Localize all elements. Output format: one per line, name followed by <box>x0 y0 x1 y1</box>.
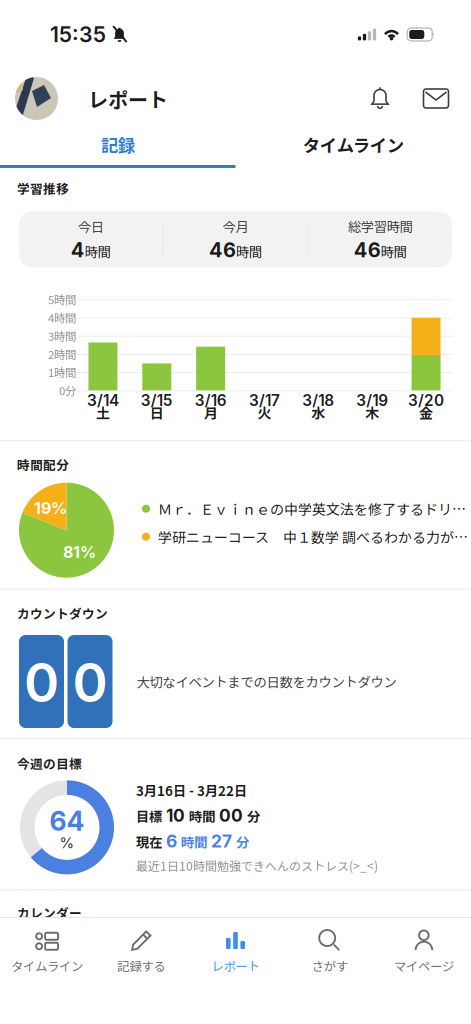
staticText: カウントダウン <box>17 604 108 622</box>
staticText: 00 <box>215 805 247 826</box>
button[interactable]: マイページ <box>377 918 471 978</box>
staticText: 0 <box>24 650 59 715</box>
staticText: 0 <box>72 650 107 715</box>
staticText: 分 <box>247 806 260 825</box>
staticText: さがす <box>312 956 348 974</box>
staticText: 5時間 <box>48 291 76 307</box>
staticText: 46 <box>354 238 381 262</box>
staticText: 3/19 <box>356 391 388 410</box>
staticText: 月 <box>204 402 218 422</box>
staticText: 今月 <box>222 217 248 236</box>
staticText: レポート <box>88 84 168 113</box>
staticText: 3/18 <box>302 391 334 410</box>
staticText: 81% <box>63 542 96 562</box>
staticText: 水 <box>311 402 325 422</box>
button[interactable]: 記録 <box>0 128 235 168</box>
staticText: 今週の目標 <box>17 754 82 772</box>
staticText: 分 <box>236 832 249 851</box>
staticText: タイムライン <box>11 956 83 974</box>
staticText: 現在 <box>136 832 162 851</box>
button[interactable]: 記録する <box>94 918 188 978</box>
staticText: 3/17 <box>249 391 280 410</box>
staticText: Ｍｒ．Ｅｖｉｎｅの中学英文法を修了するドリル 5… <box>158 498 471 519</box>
staticText: 最近1日10時間勉強できへんのストレス(>_<) <box>136 857 378 874</box>
button[interactable]: タイムライン <box>0 918 94 978</box>
staticText: 学研ニューコース 中１数学 調べるわかる力がつく… <box>158 526 471 547</box>
button[interactable]: レポート <box>188 918 283 978</box>
staticText: 3/15 <box>141 391 173 410</box>
staticText: 15:35 <box>50 22 106 47</box>
staticText: 今日 <box>78 217 104 236</box>
staticText: 3/20 <box>408 391 444 410</box>
staticText: 46 <box>209 238 236 262</box>
staticText: レポート <box>211 956 259 974</box>
button[interactable]: Profile <box>15 77 58 120</box>
staticText: 6 <box>162 831 181 852</box>
staticText: 3/14 <box>87 391 119 410</box>
staticText: 3/16 <box>195 391 227 410</box>
staticText: 時間 <box>381 242 407 261</box>
staticText: 目標 <box>136 806 162 825</box>
staticText: 時間 <box>189 806 215 825</box>
staticText: 総学習時間 <box>348 217 413 236</box>
staticText: 記録する <box>117 956 165 974</box>
staticText: 2時間 <box>48 346 76 362</box>
staticText: 日 <box>150 402 164 422</box>
button[interactable]: Messages <box>415 77 457 119</box>
staticText: 0分 <box>59 382 76 398</box>
staticText: 時間 <box>85 242 111 261</box>
staticText: 1時間 <box>48 364 76 380</box>
button[interactable]: さがす <box>283 918 377 978</box>
staticText: 10 <box>162 805 189 826</box>
staticText: 木 <box>365 402 379 422</box>
staticText: % <box>59 834 74 852</box>
staticText: 3時間 <box>48 327 76 344</box>
staticText: 火 <box>257 402 271 422</box>
staticText: 3月16日 - 3月22日 <box>136 781 247 800</box>
staticText: 4時間 <box>48 309 76 326</box>
staticText: マイページ <box>394 956 454 974</box>
staticText: 時間配分 <box>17 455 69 474</box>
staticText: 4 <box>71 238 85 262</box>
staticText: 大切なイベントまでの日数をカウントダウン <box>136 672 396 691</box>
staticText: 時間 <box>236 242 262 261</box>
staticText: カレンダー <box>17 903 82 922</box>
staticText: タイムライン <box>303 132 404 157</box>
button[interactable]: タイムライン <box>235 128 471 168</box>
staticText: 学習推移 <box>17 179 69 197</box>
staticText: 64 <box>49 805 84 837</box>
staticText: 19% <box>34 498 67 518</box>
button[interactable]: Notifications <box>360 77 400 119</box>
staticText: 27 <box>207 831 236 852</box>
staticText: 時間 <box>181 832 207 851</box>
staticText: 金 <box>419 402 433 422</box>
staticText: 記録 <box>101 132 135 157</box>
staticText: 土 <box>96 402 110 422</box>
